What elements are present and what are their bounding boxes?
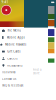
staticText: Mobile Apps	[7, 36, 25, 39]
button[interactable]: Mobile Apps	[0, 34, 24, 41]
staticText: Careers	[7, 57, 17, 60]
button[interactable]: Mobile Rewards	[0, 41, 24, 48]
button[interactable]: Contact Us	[0, 76, 24, 82]
staticText: Политика	[2, 70, 15, 74]
button[interactable]: Политика	[0, 69, 24, 76]
staticText: The Menu	[7, 29, 21, 32]
staticText: Gift Cards	[7, 50, 20, 53]
button[interactable]: FAQ & Feedback	[0, 82, 24, 89]
staticText: FAQ & Feedback	[2, 84, 23, 87]
staticText: Mobile Rewards	[5, 43, 26, 46]
staticText: Restaurants	[7, 64, 22, 67]
button[interactable]: Gift Cards	[0, 48, 24, 55]
staticText: Find a store	[33, 68, 41, 75]
button[interactable]: The Menu	[0, 27, 24, 34]
staticText: 9:41	[2, 0, 9, 4]
button[interactable]: Restaurants	[0, 62, 24, 69]
staticText: Contact Us	[2, 77, 16, 81]
button[interactable]: Careers	[0, 55, 24, 62]
